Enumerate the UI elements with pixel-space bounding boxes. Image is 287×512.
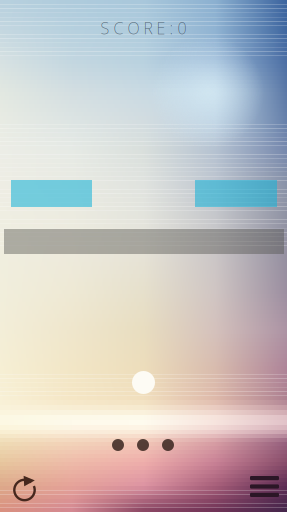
button[interactable]: Restart <box>4 469 45 510</box>
button[interactable]: Menu <box>242 468 287 505</box>
staticText: S C O R E : 0 <box>100 17 186 39</box>
